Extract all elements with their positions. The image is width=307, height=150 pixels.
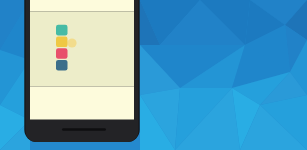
button[interactable]: Phone screen preview — [0, 0, 307, 150]
